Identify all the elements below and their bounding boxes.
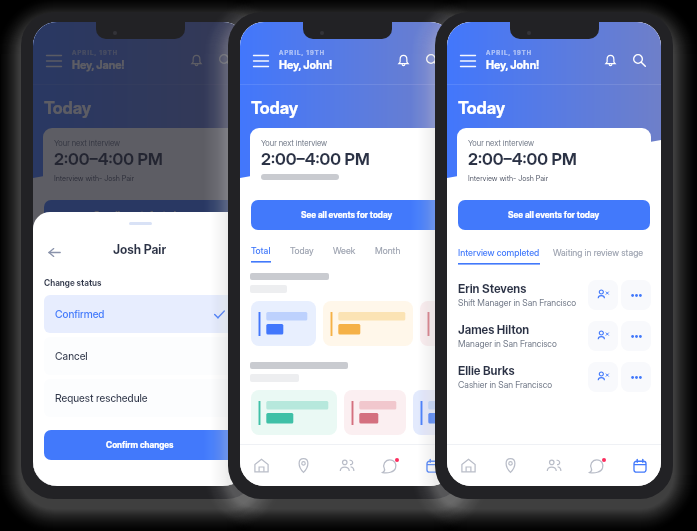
button[interactable]: People: [325, 445, 368, 486]
staticText: Request reschedule: [55, 392, 148, 405]
button[interactable]: [420, 301, 454, 346]
button[interactable]: See all events for today: [458, 200, 650, 230]
button[interactable]: Ellie Burks: [447, 356, 661, 397]
staticText: Confirm changes: [106, 440, 174, 450]
button[interactable]: Search: [215, 50, 235, 70]
button[interactable]: [323, 301, 413, 346]
button[interactable]: Messages: [368, 445, 411, 486]
staticText: Total: [251, 245, 271, 256]
button[interactable]: Back: [44, 242, 64, 262]
staticText: Change status: [44, 278, 102, 288]
button[interactable]: James Hilton: [447, 315, 661, 356]
staticText: Confirmed: [55, 308, 105, 321]
staticText: Hey, Jane!: [72, 58, 125, 72]
button[interactable]: Erin Stevens: [447, 274, 661, 315]
staticText: Interview with- Josh Pair: [468, 174, 549, 183]
button[interactable]: Remove person: [588, 321, 618, 351]
button[interactable]: Menu: [44, 50, 64, 70]
button[interactable]: Waiting in review stage: [553, 247, 644, 258]
staticText: Today: [251, 98, 299, 119]
staticText: Today: [44, 98, 92, 119]
button[interactable]: [344, 390, 406, 435]
button[interactable]: Notifications: [600, 50, 620, 70]
staticText: Interview completed: [458, 247, 540, 258]
button[interactable]: [251, 301, 316, 346]
button[interactable]: Home: [447, 445, 489, 486]
staticText: Waiting in review stage: [553, 247, 644, 258]
staticText: Interview with- Josh Pair: [54, 174, 135, 183]
button[interactable]: Total: [251, 245, 271, 256]
button[interactable]: More options: [621, 321, 651, 351]
staticText: Hey, John!: [279, 58, 332, 72]
button[interactable]: Month: [375, 245, 401, 256]
staticText: Today: [458, 98, 506, 119]
staticText: Josh Pair: [113, 242, 167, 257]
button[interactable]: See all events for today: [44, 200, 236, 230]
button[interactable]: [413, 390, 454, 435]
staticText: Manager in San Francisco: [458, 338, 557, 349]
button[interactable]: More options: [621, 362, 651, 392]
button[interactable]: Remove person: [588, 280, 618, 310]
staticText: Cashier in San Francisco: [458, 379, 553, 390]
button[interactable]: People: [532, 445, 575, 486]
staticText: Cancel: [55, 350, 88, 363]
button[interactable]: Request reschedule: [44, 379, 236, 417]
button[interactable]: Interview completed: [458, 247, 540, 258]
staticText: See all events for today: [94, 210, 186, 220]
button[interactable]: Calendar: [411, 445, 454, 486]
staticText: Today: [290, 245, 314, 256]
staticText: APRIL, 19TH: [72, 49, 119, 56]
staticText: Your next interview: [261, 138, 328, 148]
button[interactable]: Confirmed: [44, 295, 236, 333]
staticText: APRIL, 19TH: [279, 49, 326, 56]
button[interactable]: Notifications: [393, 50, 413, 70]
staticText: APRIL, 19TH: [486, 49, 533, 56]
button[interactable]: Places: [489, 445, 532, 486]
button[interactable]: Menu: [458, 50, 478, 70]
button[interactable]: See all events for today: [251, 200, 443, 230]
button[interactable]: Confirm changes: [44, 430, 236, 460]
button[interactable]: Menu: [251, 50, 271, 70]
staticText: Ellie Burks: [458, 364, 515, 378]
button[interactable]: [251, 390, 337, 435]
staticText: Your next interview: [54, 138, 121, 148]
button[interactable]: Search: [422, 50, 442, 70]
staticText: Erin Stevens: [458, 282, 527, 296]
staticText: See all events for today: [301, 210, 393, 220]
staticText: 2:00–4:00 PM: [54, 149, 163, 169]
staticText: Week: [333, 245, 356, 256]
button[interactable]: Messages: [575, 445, 618, 486]
staticText: James Hilton: [458, 323, 530, 337]
button[interactable]: Home: [240, 445, 282, 486]
staticText: Hey, John!: [486, 58, 539, 72]
button[interactable]: Remove person: [588, 362, 618, 392]
button[interactable]: Notifications: [186, 50, 206, 70]
button[interactable]: Week: [333, 245, 356, 256]
button[interactable]: Search: [629, 50, 649, 70]
button[interactable]: Calendar: [618, 445, 661, 486]
staticText: See all events for today: [508, 210, 600, 220]
button[interactable]: Today: [290, 245, 314, 256]
staticText: Shift Manager in San Francisco: [458, 297, 577, 308]
staticText: Month: [375, 245, 401, 256]
button[interactable]: Cancel: [44, 337, 236, 375]
staticText: 2:00–4:00 PM: [261, 149, 370, 169]
staticText: 2:00–4:00 PM: [468, 149, 577, 169]
button[interactable]: More options: [621, 280, 651, 310]
staticText: Your next interview: [468, 138, 535, 148]
button[interactable]: Places: [282, 445, 325, 486]
